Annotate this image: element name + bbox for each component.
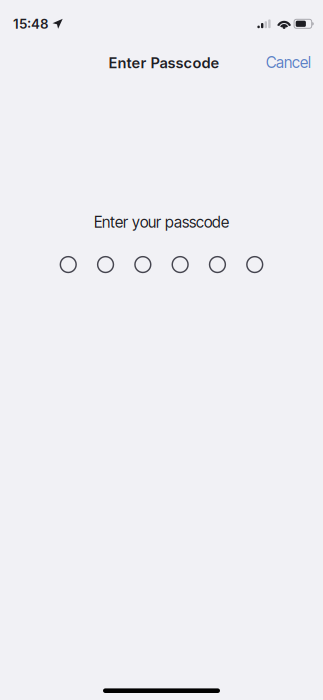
staticText: Cancel	[266, 53, 311, 72]
staticText: 15:48	[13, 16, 49, 32]
staticText: Enter Passcode	[108, 54, 219, 72]
button[interactable]: Cancel	[259, 42, 318, 80]
staticText: Enter your passcode	[94, 213, 229, 232]
